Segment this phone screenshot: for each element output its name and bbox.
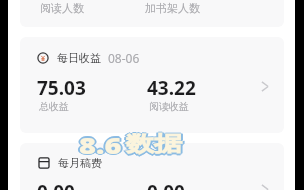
- button[interactable]: 每月稿费: [20, 143, 284, 190]
- staticText: 8.6: [79, 128, 122, 158]
- staticText: 8.6: [80, 131, 123, 160]
- staticText: 8.6: [79, 131, 122, 161]
- staticText: 阅读收益: [149, 100, 189, 113]
- staticText: 8.6: [78, 131, 121, 160]
- staticText: 8.6: [77, 130, 120, 160]
- staticText: 总收益: [39, 100, 69, 113]
- staticText: 8.6: [78, 129, 121, 159]
- staticText: 0.00: [147, 179, 185, 190]
- staticText: 数据: [128, 131, 184, 157]
- button[interactable]: 阅读人数: [20, 0, 284, 27]
- staticText: 阅读人数: [40, 1, 84, 15]
- staticText: 08-06: [108, 50, 140, 66]
- button[interactable]: 每日收益: [20, 37, 284, 133]
- other: View daily earnings details: [258, 80, 271, 93]
- staticText: 8.6: [81, 130, 124, 160]
- staticText: 数据: [127, 131, 183, 158]
- staticText: 数据: [127, 130, 183, 157]
- staticText: 数据: [126, 132, 182, 159]
- staticText: 每日收益: [57, 51, 101, 65]
- staticText: 8.6: [79, 130, 122, 160]
- staticText: 8.6: [80, 129, 123, 159]
- staticText: 数据: [125, 130, 181, 157]
- staticText: 0.00: [37, 179, 75, 190]
- staticText: 加书架人数: [145, 1, 200, 15]
- staticText: 数据: [126, 131, 182, 157]
- other: View monthly fee details: [258, 183, 271, 190]
- staticText: 数据: [126, 129, 182, 156]
- staticText: 75.03: [37, 75, 86, 101]
- staticText: 数据: [125, 131, 181, 158]
- staticText: 每月稿费: [58, 156, 102, 170]
- staticText: 43.22: [147, 75, 196, 101]
- staticText: 数据: [124, 131, 180, 157]
